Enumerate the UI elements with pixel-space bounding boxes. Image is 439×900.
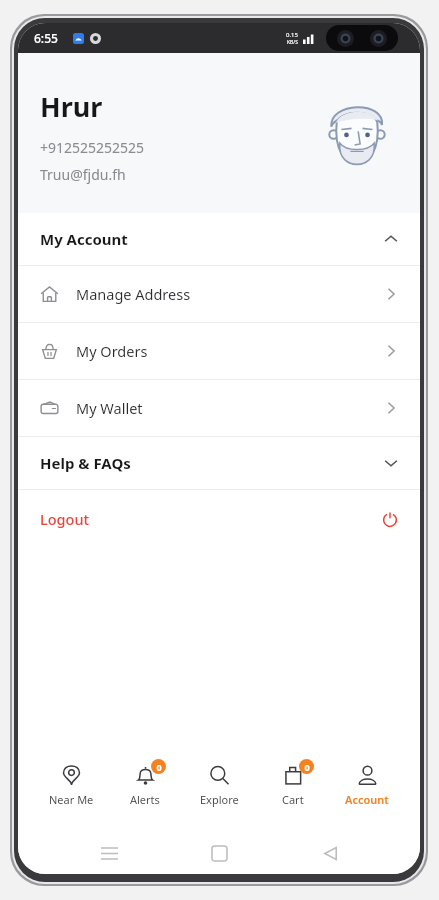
staticText: My Account [40,229,384,249]
staticText: Account [345,792,389,807]
button[interactable]: My Account [18,213,420,265]
button[interactable]: 0 [108,756,182,818]
button[interactable]: Account [330,756,404,818]
staticText: Cart [282,792,304,807]
button[interactable]: My Orders [18,323,420,379]
button[interactable]: Manage Address [18,266,420,322]
staticText: Hrur [40,88,103,125]
staticText: KB/S [287,39,298,46]
staticText: My Wallet [76,398,384,418]
button[interactable]: My Wallet [18,380,420,436]
staticText: My Orders [76,341,384,361]
staticText: +912525252525 [40,138,145,157]
staticText: 0 [304,761,310,773]
button[interactable]: Back [310,833,350,873]
staticText: 0 [156,761,162,773]
staticText: Logout [40,509,382,529]
button[interactable]: Logout [18,490,420,548]
staticText: 6:55 [34,30,58,46]
button[interactable]: Recent apps [89,833,129,873]
button[interactable]: Home [199,833,239,873]
staticText: Truu@fjdu.fh [40,165,126,184]
staticText: Alerts [130,792,160,807]
staticText: Explore [200,792,239,807]
staticText: Help & FAQs [40,453,384,473]
staticText: 0.15 [286,31,298,39]
button[interactable]: Explore [182,756,256,818]
staticText: Near Me [49,792,94,807]
button[interactable]: 0 [256,756,330,818]
button[interactable]: Near Me [34,756,108,818]
button[interactable]: Help & FAQs [18,437,420,489]
staticText: Manage Address [76,284,384,304]
